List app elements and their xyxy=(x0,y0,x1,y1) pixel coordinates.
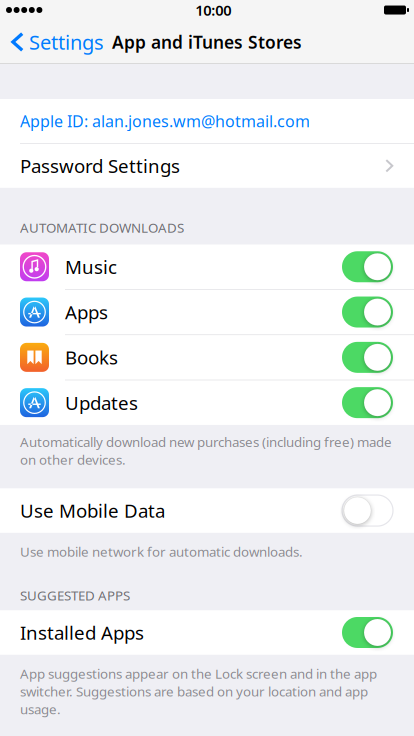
button[interactable]: Password Settings xyxy=(0,144,414,188)
staticText: SUGGESTED APPS xyxy=(20,586,130,604)
button[interactable]: Books xyxy=(0,335,414,380)
staticText: Music xyxy=(65,254,117,279)
staticText: Apps xyxy=(65,300,108,324)
staticText: Password Settings xyxy=(20,153,180,178)
staticText: Settings xyxy=(29,29,104,55)
staticText: Apple ID: alan.jones.wm@hotmail.com xyxy=(20,110,310,132)
staticText: 10:00 xyxy=(195,0,231,20)
button[interactable]: Music xyxy=(0,244,414,289)
staticText: App suggestions appear on the Lock scree… xyxy=(20,665,377,718)
staticText: Use Mobile Data xyxy=(20,498,165,523)
staticText: App and iTunes Stores xyxy=(112,30,302,53)
staticText: Books xyxy=(65,345,118,370)
button[interactable]: Apple ID: alan.jones.wm@hotmail.com xyxy=(0,99,414,143)
button[interactable]: Installed Apps xyxy=(0,610,414,655)
button[interactable]: Updates xyxy=(0,380,414,425)
staticText: Automatically download new purchases (in… xyxy=(20,433,392,468)
staticText: Updates xyxy=(65,390,138,415)
button[interactable]: Back to Settings xyxy=(0,20,112,64)
button[interactable]: Apps xyxy=(0,290,414,334)
staticText: Installed Apps xyxy=(20,620,144,645)
button[interactable]: Use Mobile Data xyxy=(0,488,414,533)
staticText: Use mobile network for automatic downloa… xyxy=(20,543,303,560)
staticText: AUTOMATIC DOWNLOADS xyxy=(20,219,184,236)
